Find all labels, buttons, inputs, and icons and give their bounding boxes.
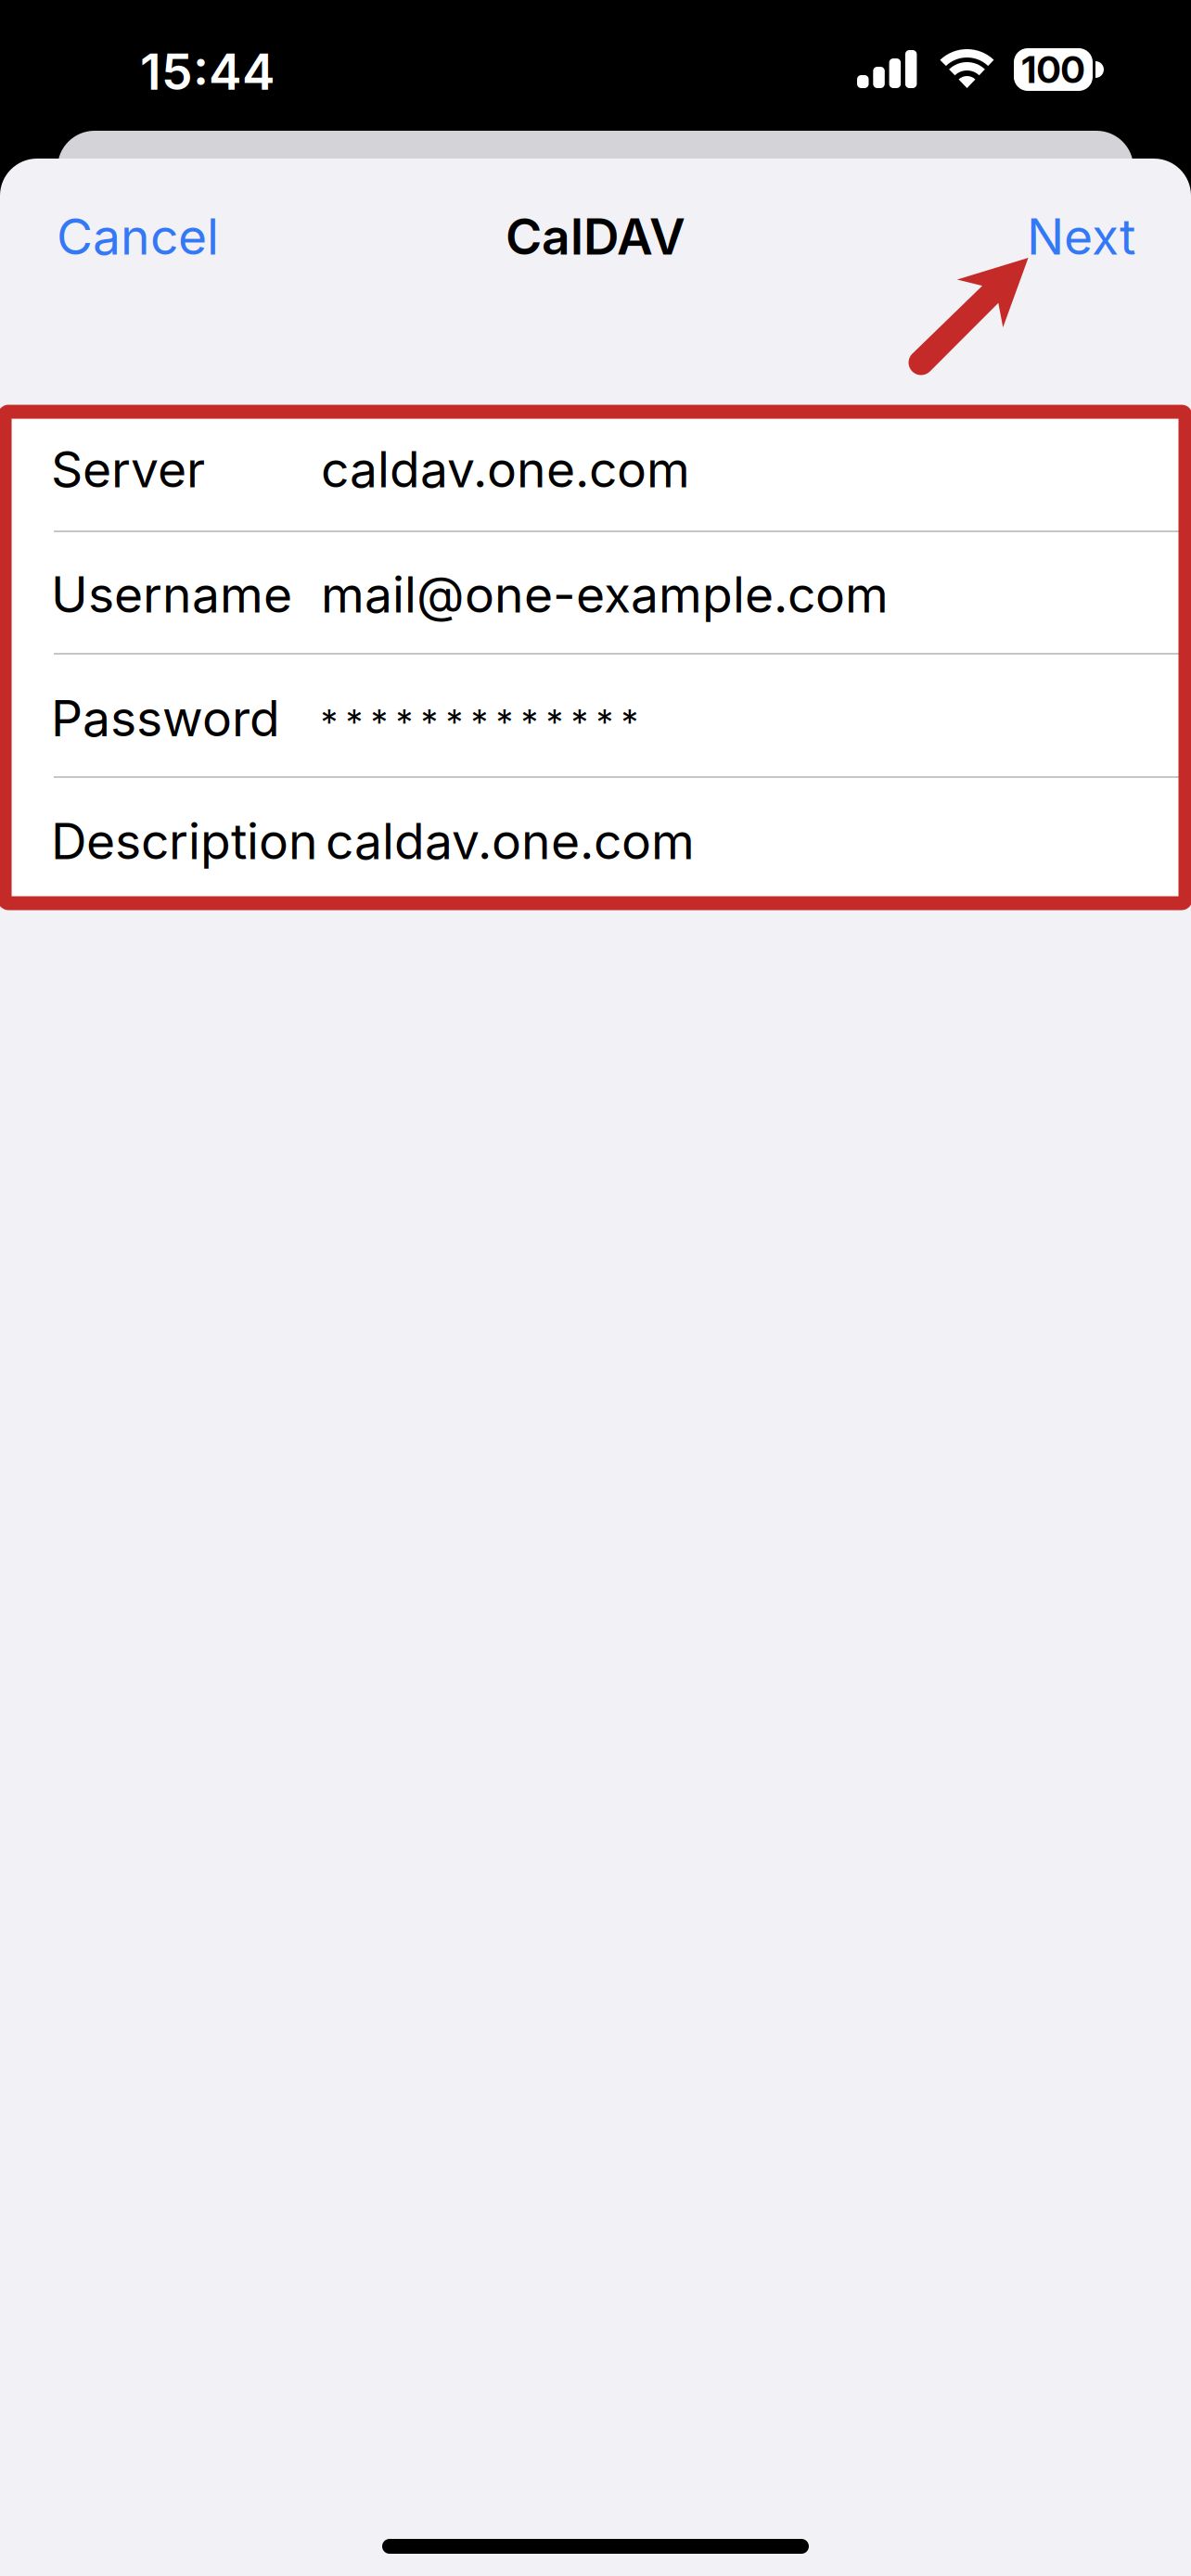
staticText: caldav.one.com [326,811,695,871]
button[interactable]: Description [12,778,1179,897]
staticText: Next [1027,207,1135,266]
staticText: 15:44 [140,42,275,102]
staticText: Cancel [57,207,219,266]
button[interactable]: Server [12,419,1179,530]
staticText: caldav.one.com [321,439,690,499]
staticText: CalDAV [506,207,685,266]
staticText: mail@one-example.com [321,564,889,624]
staticText: Username [51,564,292,624]
staticText: Server [51,439,205,499]
staticText: * * * * * * * * * * * * * [321,701,638,743]
button[interactable]: Cancel [57,199,224,274]
button[interactable]: Next [968,199,1135,274]
staticText: Description [51,811,318,871]
staticText: Password [51,688,280,748]
button[interactable]: Username [12,532,1179,653]
button[interactable]: Password [12,655,1179,776]
staticText: 100 [1022,47,1085,92]
